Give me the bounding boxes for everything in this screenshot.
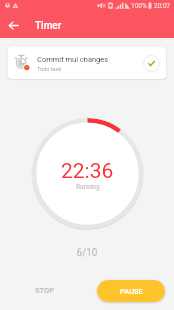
staticText: 6/10 bbox=[0, 247, 174, 259]
staticText: Running bbox=[76, 183, 100, 191]
staticText: Timer bbox=[35, 20, 62, 32]
staticText: PAUSE bbox=[120, 287, 143, 296]
staticText: Commit mui changes bbox=[37, 55, 109, 64]
staticText: 100% bbox=[131, 2, 147, 10]
button[interactable]: PAUSE bbox=[97, 280, 165, 302]
button[interactable]: Mark task done bbox=[143, 55, 160, 72]
staticText: Todo task bbox=[37, 66, 62, 72]
button[interactable]: Back bbox=[0, 12, 26, 38]
staticText: 20:07 bbox=[154, 2, 171, 10]
staticText: 22:36 bbox=[61, 159, 114, 184]
button[interactable]: Commit mui changes bbox=[8, 47, 166, 79]
button[interactable]: STOP bbox=[29, 281, 60, 300]
staticText: STOP bbox=[35, 286, 54, 295]
